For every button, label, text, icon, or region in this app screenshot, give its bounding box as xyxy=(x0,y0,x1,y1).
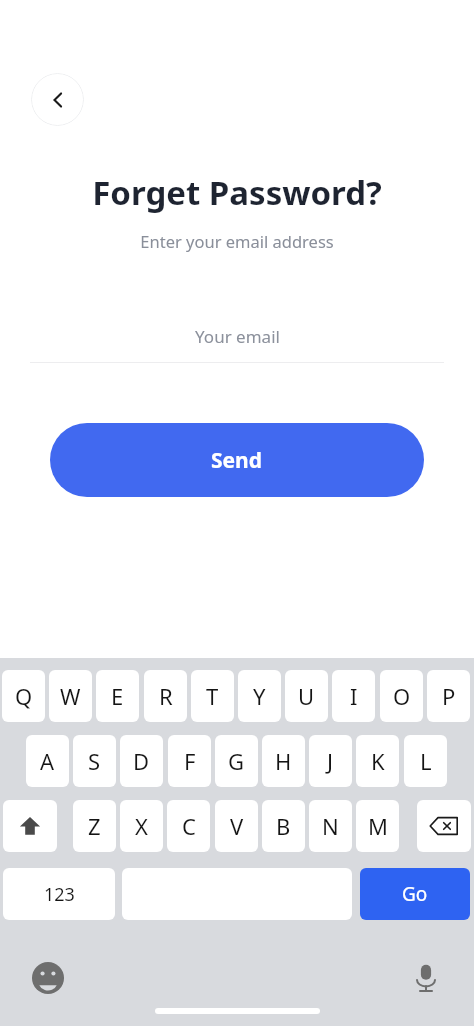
button[interactable]: R xyxy=(144,670,187,722)
staticText: A xyxy=(40,746,55,776)
staticText: U xyxy=(298,681,315,711)
staticText: W xyxy=(60,681,81,711)
staticText: Your email xyxy=(195,325,280,348)
staticText: I xyxy=(350,681,358,711)
button[interactable]: Backspace xyxy=(417,800,471,852)
button[interactable]: T xyxy=(191,670,234,722)
button[interactable]: G xyxy=(215,735,258,787)
button[interactable]: P xyxy=(427,670,470,722)
button[interactable]: Z xyxy=(73,800,116,852)
button[interactable]: F xyxy=(168,735,211,787)
button[interactable]: K xyxy=(356,735,399,787)
button[interactable]: Your email xyxy=(0,310,474,363)
staticText: D xyxy=(133,746,150,776)
staticText: B xyxy=(276,811,291,841)
button[interactable]: J xyxy=(309,735,352,787)
button[interactable]: H xyxy=(262,735,305,787)
button[interactable]: B xyxy=(262,800,305,852)
staticText: O xyxy=(393,681,411,711)
button[interactable]: Back xyxy=(31,73,84,126)
button[interactable]: S xyxy=(73,735,116,787)
staticText: X xyxy=(135,811,148,841)
staticText: F xyxy=(184,746,196,776)
button[interactable]: W xyxy=(49,670,92,722)
button[interactable]: D xyxy=(120,735,163,787)
staticText: G xyxy=(228,746,245,776)
button[interactable]: Q xyxy=(2,670,45,722)
button[interactable]: Go xyxy=(360,868,470,920)
button[interactable]: Send xyxy=(50,423,424,497)
button[interactable]: E xyxy=(96,670,139,722)
staticText: S xyxy=(88,746,101,776)
staticText: T xyxy=(206,681,219,711)
button[interactable]: N xyxy=(309,800,352,852)
button[interactable]: X xyxy=(120,800,163,852)
staticText: P xyxy=(442,681,456,711)
button[interactable]: O xyxy=(380,670,423,722)
button[interactable]: A xyxy=(26,735,69,787)
staticText: Y xyxy=(253,681,266,711)
staticText: Enter your email address xyxy=(140,230,334,252)
button[interactable]: Y xyxy=(238,670,281,722)
staticText: J xyxy=(327,746,334,776)
staticText: Go xyxy=(402,881,428,907)
staticText: R xyxy=(159,681,173,711)
staticText: L xyxy=(420,746,432,776)
staticText: V xyxy=(230,811,244,841)
staticText: M xyxy=(368,811,388,841)
button[interactable]: Emoji xyxy=(26,956,70,1000)
staticText: 123 xyxy=(44,882,75,907)
button[interactable]: I xyxy=(332,670,375,722)
staticText: Q xyxy=(15,681,33,711)
button[interactable]: Voice input xyxy=(404,956,448,1000)
button[interactable]: C xyxy=(167,800,210,852)
button[interactable]: U xyxy=(285,670,328,722)
button[interactable]: 123 xyxy=(3,868,115,920)
staticText: N xyxy=(322,811,339,841)
staticText: Z xyxy=(88,811,101,841)
staticText: K xyxy=(371,746,385,776)
button[interactable]: M xyxy=(356,800,399,852)
button[interactable]: L xyxy=(404,735,447,787)
staticText: C xyxy=(182,811,196,841)
button[interactable]: V xyxy=(215,800,258,852)
staticText: H xyxy=(275,746,292,776)
staticText: E xyxy=(111,681,124,711)
staticText: Send xyxy=(211,446,263,475)
button[interactable]: Shift xyxy=(3,800,57,852)
staticText: Forget Password? xyxy=(92,170,382,215)
